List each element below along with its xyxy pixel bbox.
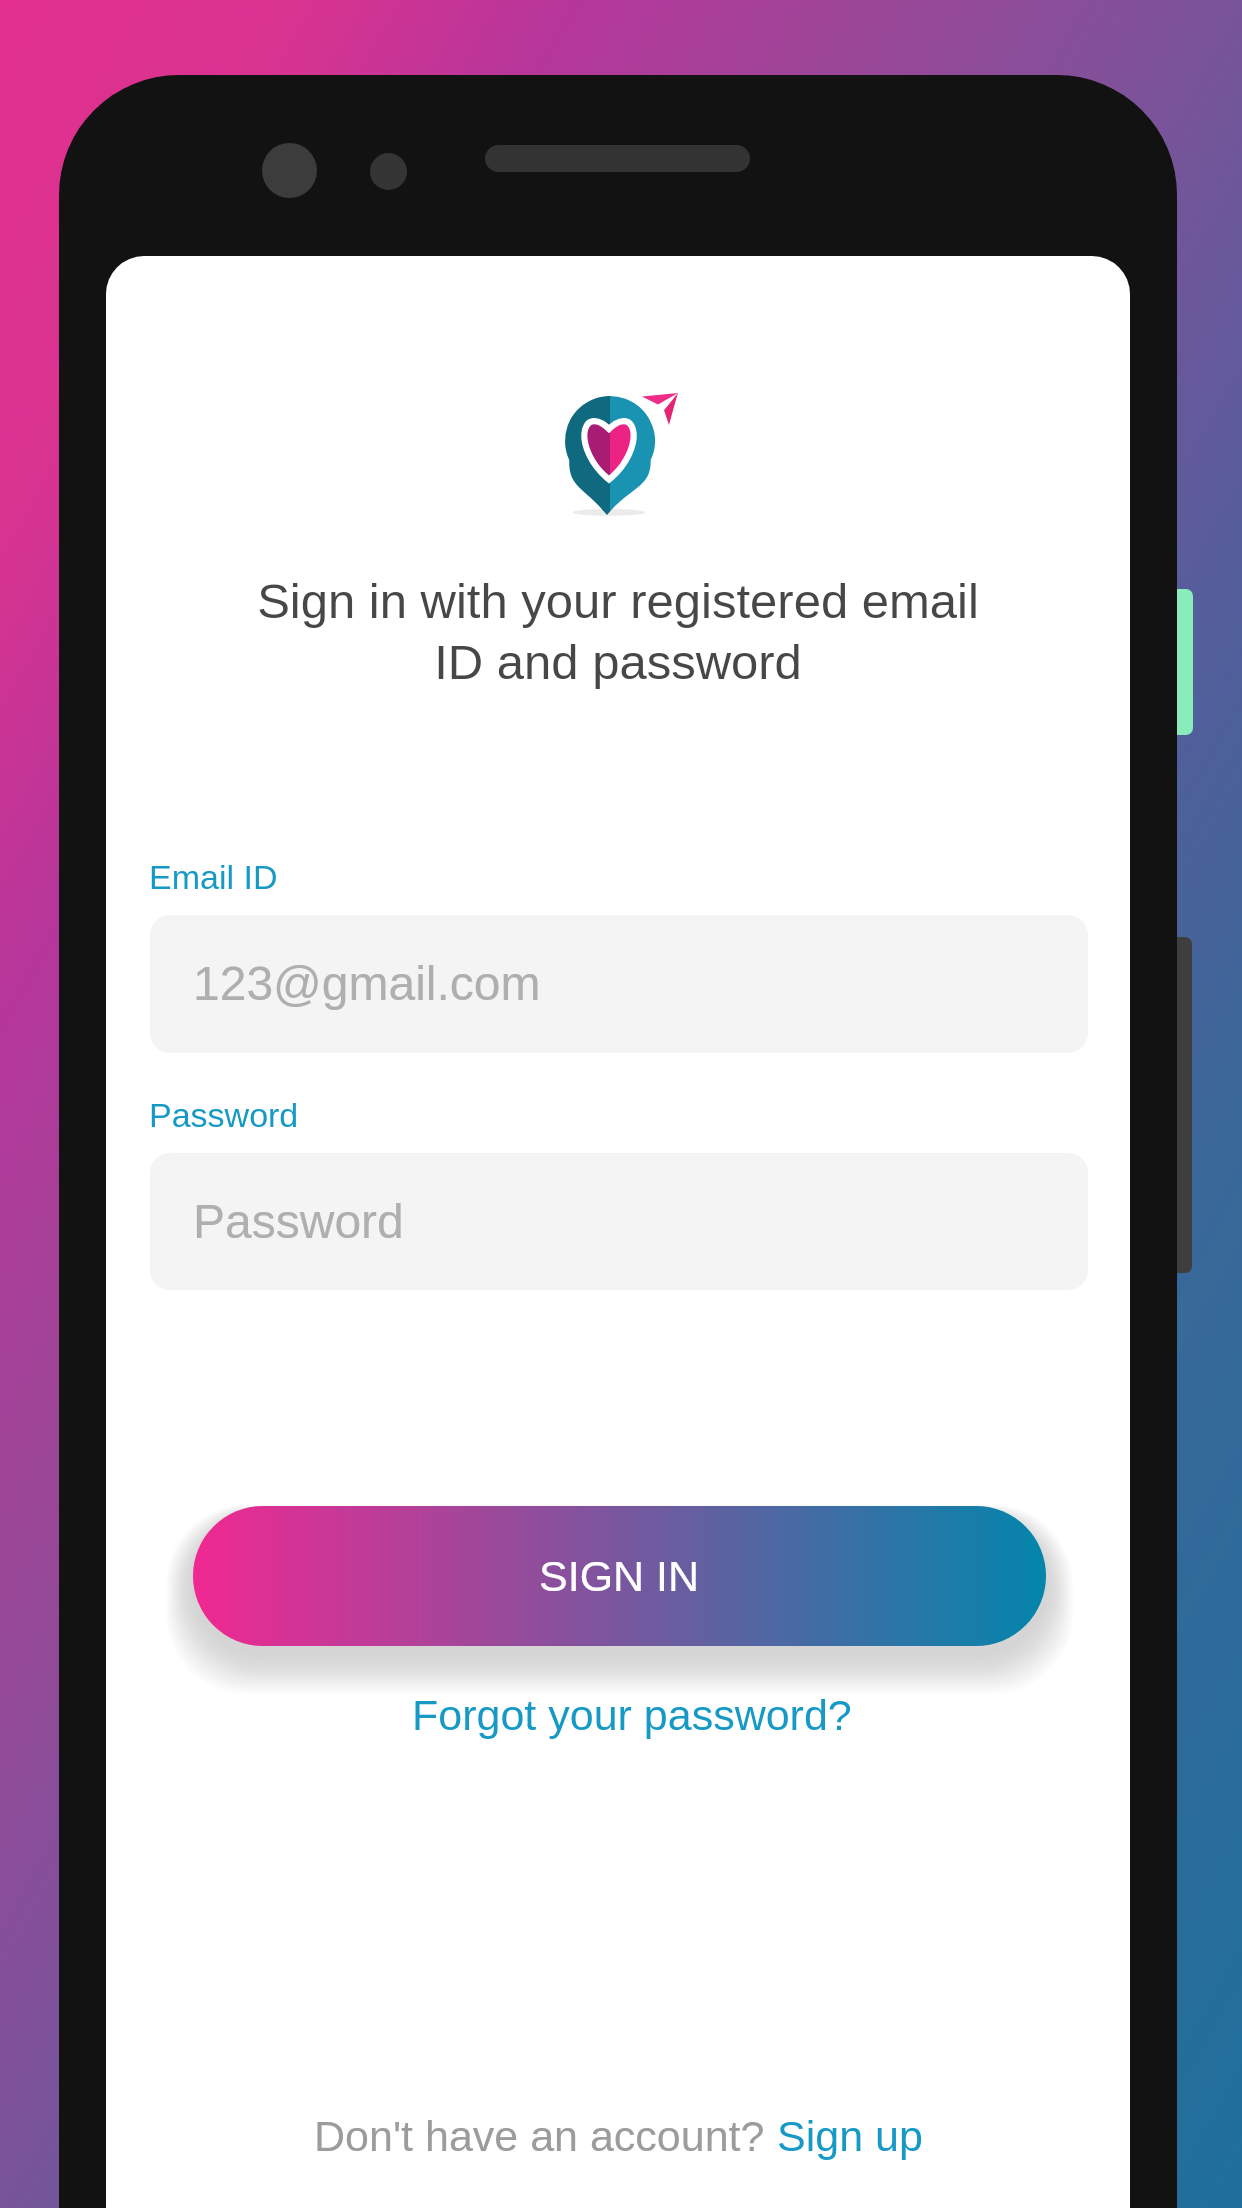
button[interactable]: SIGN IN <box>193 1506 1046 1646</box>
other: App logo <box>563 393 681 517</box>
other: Power <box>1160 589 1193 735</box>
button[interactable]: Password <box>150 1153 1088 1290</box>
staticText: Sign in with your registered email ID an… <box>106 574 1130 689</box>
button[interactable]: 123@gmail.com <box>150 915 1088 1053</box>
staticText: Password <box>149 1096 299 1134</box>
staticText: 123@gmail.com <box>193 957 541 1011</box>
staticText: Don't have an account? <box>314 2112 777 2160</box>
button[interactable]: Sign up <box>777 2112 923 2160</box>
other: Volume <box>1160 937 1192 1273</box>
staticText: Password <box>193 1195 404 1249</box>
staticText: Email ID <box>149 858 278 896</box>
staticText: SIGN IN <box>539 1552 700 1600</box>
button[interactable]: Forgot your password? <box>412 1691 852 1739</box>
